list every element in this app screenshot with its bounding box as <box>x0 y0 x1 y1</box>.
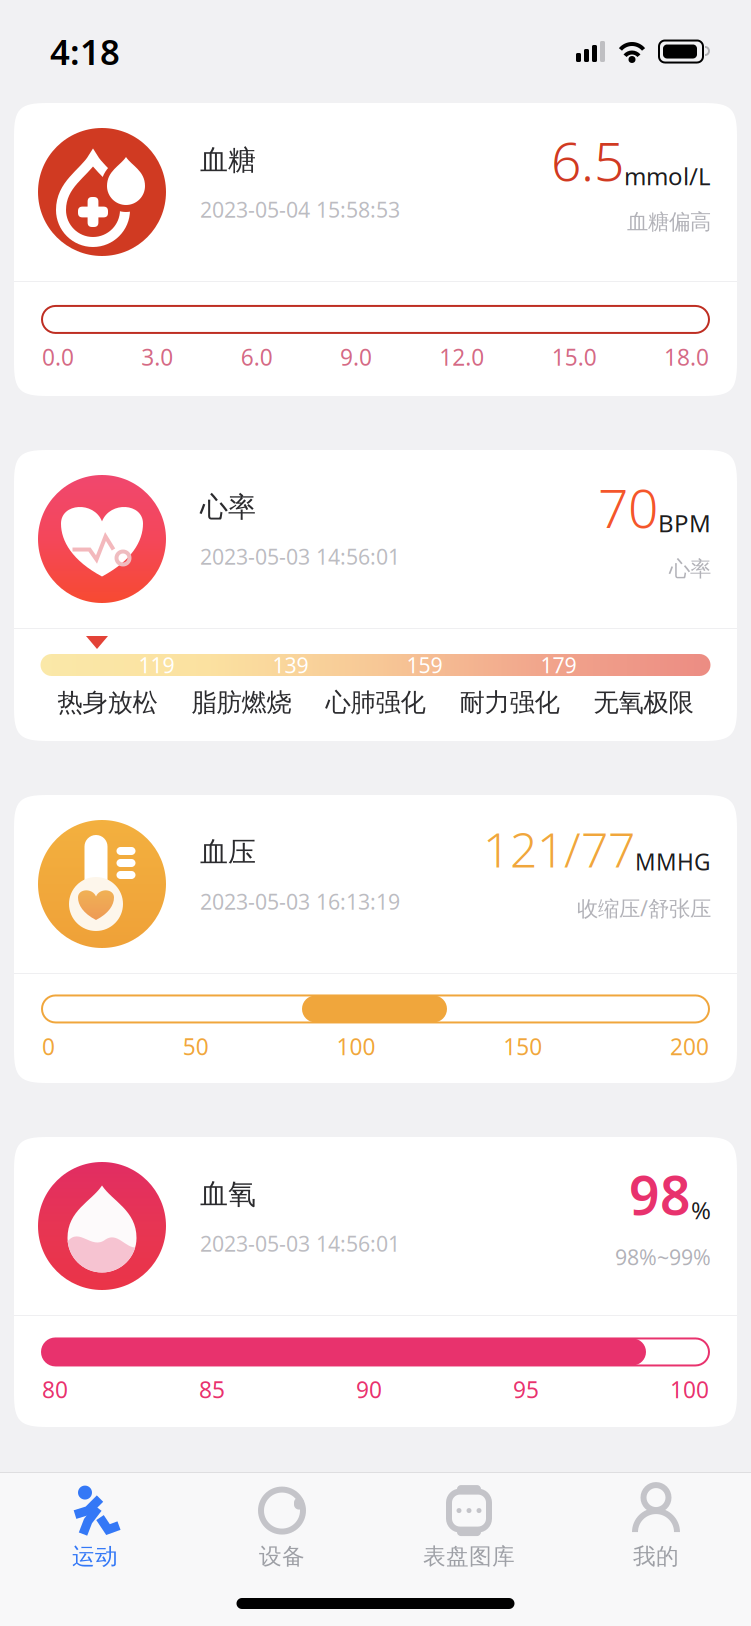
button[interactable]: 设备 <box>188 1473 375 1581</box>
staticText: 我的 <box>633 1543 679 1570</box>
staticText: MMHG <box>635 847 711 877</box>
staticText: 6.5 <box>551 125 624 196</box>
staticText: 159 <box>406 651 442 679</box>
staticText: 耐力强化 <box>459 687 559 718</box>
staticText: 100 <box>670 1374 709 1404</box>
button[interactable]: 心率 <box>0 450 751 741</box>
staticText: 无氧极限 <box>593 687 693 718</box>
staticText: 80 <box>42 1374 68 1404</box>
staticText: 2023-05-03 16:13:19 <box>200 887 400 916</box>
staticText: 85 <box>199 1374 225 1404</box>
staticText: 9.0 <box>340 342 372 372</box>
staticText: BPM <box>658 507 711 539</box>
staticText: 脂肪燃烧 <box>191 687 291 718</box>
staticText: 179 <box>540 651 576 679</box>
staticText: 血氧 <box>200 1177 256 1211</box>
staticText: 收缩压/舒张压 <box>577 894 711 922</box>
button[interactable]: 表盘图库 <box>375 1473 562 1581</box>
staticText: % <box>691 1194 711 1226</box>
staticText: 6.0 <box>241 342 273 372</box>
staticText: 150 <box>503 1031 542 1061</box>
staticText: 心肺强化 <box>325 687 425 718</box>
staticText: 70 <box>598 472 658 543</box>
staticText: 0 <box>42 1031 55 1061</box>
staticText: 血糖偏高 <box>627 209 711 235</box>
staticText: 2023-05-04 15:58:53 <box>200 195 400 224</box>
staticText: 100 <box>336 1031 375 1061</box>
staticText: 4:18 <box>50 28 120 74</box>
staticText: 2023-05-03 14:56:01 <box>200 1229 400 1258</box>
staticText: 50 <box>183 1031 209 1061</box>
staticText: 200 <box>670 1031 709 1061</box>
staticText: 设备 <box>259 1543 305 1570</box>
staticText: 心率 <box>669 556 711 582</box>
staticText: 139 <box>272 651 308 679</box>
staticText: 运动 <box>72 1543 118 1570</box>
staticText: 12.0 <box>439 342 484 372</box>
staticText: 121/77 <box>483 817 635 881</box>
staticText: 98%~99% <box>615 1243 711 1271</box>
button[interactable]: 血压 <box>0 795 751 1083</box>
button[interactable]: 我的 <box>562 1473 749 1581</box>
staticText: 18.0 <box>664 342 709 372</box>
staticText: 热身放松 <box>57 687 157 718</box>
button[interactable]: 血糖 <box>0 103 751 396</box>
staticText: 15.0 <box>552 342 597 372</box>
staticText: 血压 <box>200 835 256 869</box>
staticText: 90 <box>356 1374 382 1404</box>
button[interactable]: 血氧 <box>0 1137 751 1427</box>
staticText: 2023-05-03 14:56:01 <box>200 542 400 571</box>
staticText: 心率 <box>200 490 256 524</box>
staticText: 血糖 <box>200 143 256 177</box>
staticText: 95 <box>513 1374 539 1404</box>
staticText: 119 <box>138 651 174 679</box>
staticText: 98 <box>629 1159 691 1230</box>
staticText: 3.0 <box>141 342 173 372</box>
staticText: 表盘图库 <box>423 1543 515 1570</box>
staticText: mmol/L <box>624 160 711 192</box>
staticText: 0.0 <box>42 342 74 372</box>
button[interactable]: 运动 <box>1 1473 188 1581</box>
